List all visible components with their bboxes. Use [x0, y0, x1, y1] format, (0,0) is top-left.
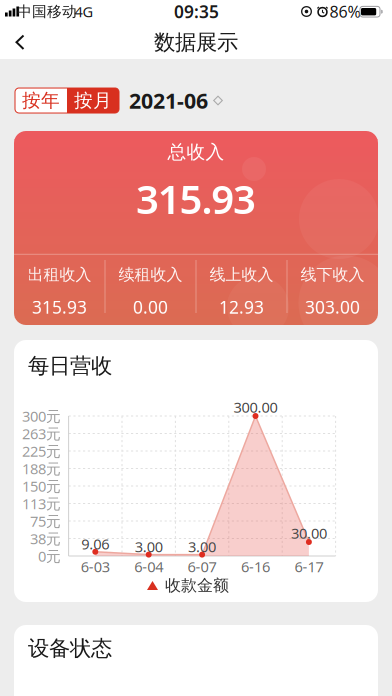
staticText: 6-17	[294, 557, 323, 576]
staticText: 6-16	[241, 557, 270, 576]
staticText: 09:35	[174, 0, 219, 23]
staticText: 30.00	[291, 523, 327, 543]
staticText: 6-03	[81, 557, 110, 576]
staticText: 188元	[22, 459, 61, 478]
staticText: 数据展示	[154, 29, 238, 56]
button[interactable]: Back	[0, 0, 40, 59]
staticText: 0元	[38, 546, 61, 566]
staticText: 总收入	[167, 140, 224, 163]
button[interactable]: 按月	[67, 88, 119, 113]
staticText: 6-07	[188, 557, 217, 576]
staticText: 按月	[74, 89, 112, 112]
staticText: 3.00	[188, 537, 216, 556]
staticText: 263元	[22, 424, 61, 443]
staticText: 225元	[22, 441, 61, 461]
staticText: 150元	[22, 476, 61, 496]
staticText: 0.00	[133, 295, 168, 318]
staticText: 设备状态	[28, 635, 112, 662]
staticText: 续租收入	[118, 265, 182, 285]
button[interactable]: 按年	[15, 88, 67, 113]
staticText: 300.00	[233, 397, 277, 417]
staticText: 中国移动	[17, 2, 77, 20]
staticText: 75元	[30, 511, 61, 531]
staticText: 收款金额	[165, 576, 229, 595]
staticText: 线下收入	[300, 265, 364, 285]
staticText: 出租收入	[27, 265, 91, 285]
button[interactable]: 选择月份 2021-06	[129, 86, 223, 115]
staticText: 303.00	[305, 295, 360, 318]
staticText: 315.93	[136, 172, 256, 225]
staticText: 2021-06	[129, 86, 208, 115]
staticText: 38元	[30, 529, 61, 548]
staticText: 300元	[22, 406, 61, 426]
staticText: 每日营收	[28, 353, 112, 379]
staticText: 315.93	[32, 295, 87, 318]
staticText: 113元	[22, 494, 61, 513]
staticText: 4G	[74, 2, 93, 21]
staticText: 9.06	[81, 534, 109, 553]
staticText: 12.93	[219, 295, 264, 318]
staticText: 6-04	[134, 557, 163, 576]
staticText: 按年	[22, 89, 60, 112]
staticText: 3.00	[135, 537, 163, 556]
staticText: 线上收入	[209, 265, 273, 285]
staticText: 86%	[329, 1, 360, 22]
